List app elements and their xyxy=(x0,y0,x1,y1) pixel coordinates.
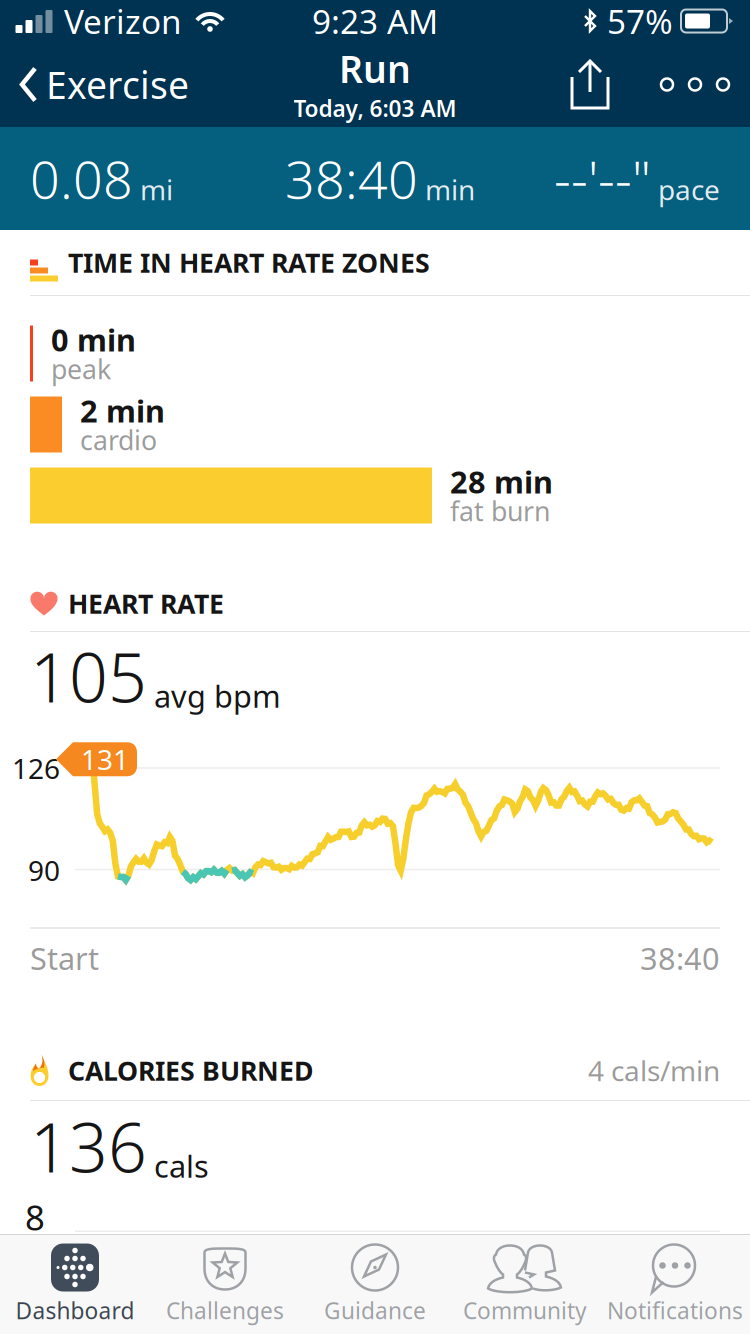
staticText: --'--" xyxy=(554,144,651,213)
staticText: 28 min xyxy=(450,461,553,502)
staticText: 0 min xyxy=(51,319,136,360)
staticText: CALORIES BURNED xyxy=(68,1053,314,1088)
staticText: Start xyxy=(30,938,99,978)
staticText: cardio xyxy=(80,422,157,458)
staticText: TIME IN HEART RATE ZONES xyxy=(68,245,430,280)
staticText: 38:40 xyxy=(285,144,418,213)
staticText: pace xyxy=(658,171,720,208)
button[interactable]: Challenges xyxy=(150,1235,300,1334)
staticText: Dashboard xyxy=(15,1295,134,1325)
button[interactable]: Dashboard xyxy=(0,1235,150,1334)
staticText: 9:23 AM xyxy=(312,0,438,43)
staticText: Run xyxy=(339,44,411,93)
staticText: min xyxy=(425,171,475,208)
staticText: Community xyxy=(463,1295,587,1325)
staticText: fat burn xyxy=(450,493,550,529)
button[interactable]: Notifications xyxy=(600,1235,750,1334)
staticText: avg bpm xyxy=(154,675,281,716)
staticText: HEART RATE xyxy=(68,586,224,621)
button[interactable]: Exercise xyxy=(0,42,203,127)
staticText: mi xyxy=(140,171,173,208)
button[interactable]: More options xyxy=(640,42,750,127)
staticText: cals xyxy=(154,1145,209,1186)
staticText: 105 xyxy=(30,631,147,721)
staticText: 8 xyxy=(25,1194,45,1240)
button[interactable]: Share xyxy=(540,42,640,127)
button[interactable]: Guidance xyxy=(300,1235,450,1334)
staticText: 0.08 xyxy=(30,144,133,213)
staticText: Guidance xyxy=(324,1295,426,1325)
staticText: Today, 6:03 AM xyxy=(293,93,456,123)
staticText: 2 min xyxy=(80,390,165,431)
staticText: 136 xyxy=(30,1101,147,1191)
staticText: Verizon xyxy=(64,0,182,43)
staticText: 90 xyxy=(28,852,60,889)
staticText: peak xyxy=(51,351,111,387)
staticText: Notifications xyxy=(607,1295,743,1325)
staticText: 131 xyxy=(81,741,129,778)
staticText: 38:40 xyxy=(640,938,720,978)
button[interactable]: Community xyxy=(450,1235,600,1334)
staticText: 126 xyxy=(12,750,60,787)
staticText: 4 cals/min xyxy=(588,1052,720,1089)
staticText: Challenges xyxy=(166,1295,284,1325)
staticText: Exercise xyxy=(46,60,189,109)
staticText: 57% xyxy=(607,0,673,43)
